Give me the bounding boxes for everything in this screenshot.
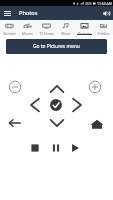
button[interactable]: Down [48,114,66,132]
staticText: Movies [22,31,33,35]
staticText: Photos [19,9,38,17]
staticText: Music [61,31,71,35]
button[interactable]: Pause [47,139,65,157]
button[interactable]: Music [56,20,75,35]
staticText: Pictures [78,31,91,35]
button[interactable]: Left [26,96,44,114]
staticText: TV Shows [39,31,54,35]
button[interactable]: Movies [18,20,37,35]
button[interactable]: Volume [99,6,113,20]
button[interactable]: Zoom in [86,78,104,96]
button[interactable]: Remote [0,20,18,35]
button[interactable]: Folders [94,20,113,35]
staticText: 46% [85,1,92,6]
button[interactable]: Zoom out [6,78,24,96]
button[interactable]: Home [88,115,106,133]
button[interactable]: Back [6,114,24,132]
staticText: 11:54 AM [97,1,112,6]
button[interactable]: Pictures [75,20,94,35]
button[interactable]: Up [48,80,66,98]
button[interactable]: Play [66,139,84,157]
button[interactable]: Open navigation menu [0,6,15,20]
staticText: Folders [98,31,110,35]
staticText: Go to Pictures menu [33,43,80,50]
button[interactable]: Stop [26,139,44,157]
button[interactable]: Go to Pictures menu [6,39,107,54]
button[interactable]: TV Shows [37,20,56,35]
staticText: Remote [3,31,16,35]
button[interactable]: Right [68,96,86,114]
button[interactable]: OK [47,96,65,114]
